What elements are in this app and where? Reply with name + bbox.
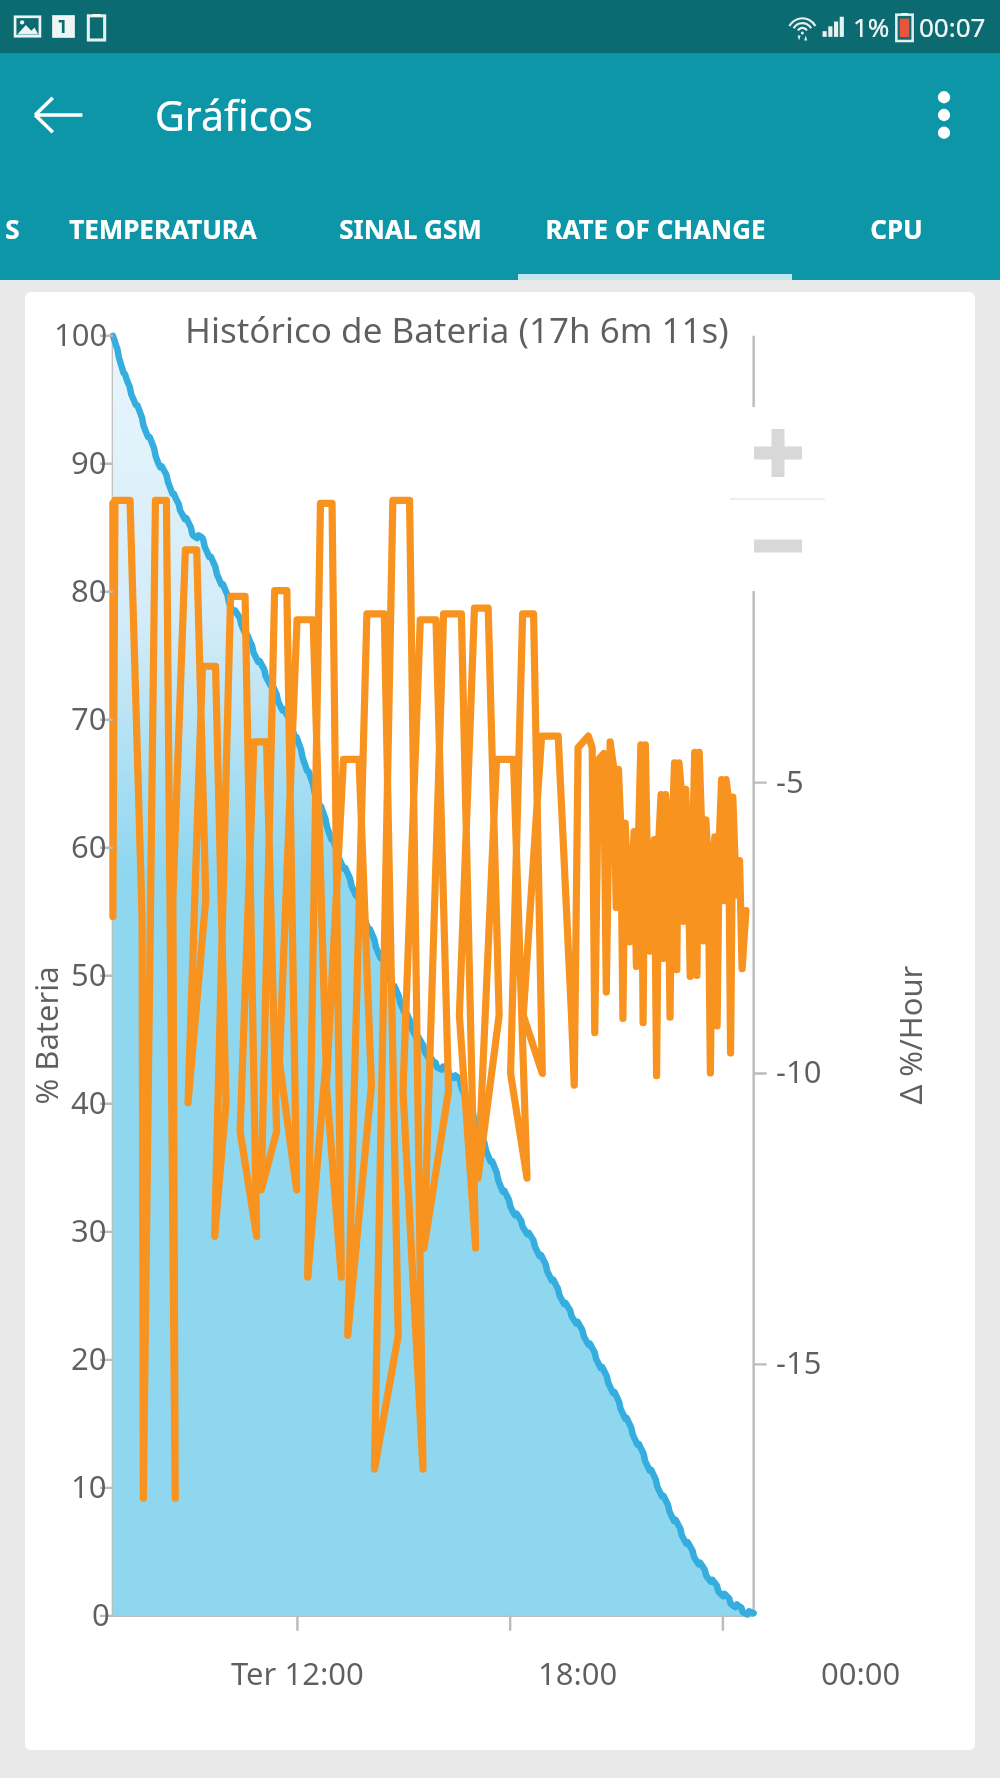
staticText: Gráficos (155, 87, 313, 143)
staticText: 80 (71, 569, 107, 611)
staticText: TEMPERATURA (69, 211, 257, 246)
staticText: 40 (71, 1081, 107, 1123)
staticText: Histórico de Bateria (17h 6m 11s) (185, 306, 729, 354)
staticText: Δ %/Hour (888, 965, 930, 1104)
staticText: S (5, 211, 20, 246)
button[interactable]: RATE OF CHANGE (518, 176, 792, 280)
staticText: 1% (853, 9, 890, 44)
button[interactable]: S (0, 176, 24, 280)
staticText: -15 (776, 1341, 822, 1383)
staticText: CPU (870, 211, 923, 246)
staticText: -10 (776, 1050, 822, 1092)
staticText: 00:00 (821, 1652, 901, 1694)
staticText: 10 (71, 1465, 107, 1507)
staticText: Ter 12:00 (231, 1652, 364, 1694)
staticText: 30 (71, 1209, 107, 1251)
staticText: 0 (92, 1593, 110, 1635)
staticText: 70 (71, 697, 107, 739)
staticText: 00:07 (919, 9, 986, 44)
button[interactable]: Zoom in (730, 407, 825, 498)
button[interactable]: More options (908, 79, 980, 151)
staticText: 90 (71, 441, 107, 483)
button[interactable]: SINAL GSM (302, 176, 518, 280)
staticText: 50 (71, 953, 107, 995)
staticText: 20 (71, 1337, 107, 1379)
staticText: 0 (776, 469, 794, 511)
staticText: RATE OF CHANGE (545, 211, 766, 246)
staticText: SINAL GSM (339, 211, 482, 246)
staticText: 18:00 (538, 1652, 618, 1694)
button[interactable]: CPU (792, 176, 1000, 280)
button[interactable]: Back (22, 79, 94, 151)
staticText: 60 (71, 825, 107, 867)
staticText: 100 (54, 313, 108, 355)
button[interactable]: TEMPERATURA (24, 176, 302, 280)
button[interactable]: Zoom out (730, 500, 825, 591)
staticText: % Bateria (25, 965, 66, 1104)
staticText: -5 (776, 760, 804, 802)
